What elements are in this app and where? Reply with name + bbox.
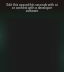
- staticText: Edit this app within seconds with ai or …: [6, 3, 58, 13]
